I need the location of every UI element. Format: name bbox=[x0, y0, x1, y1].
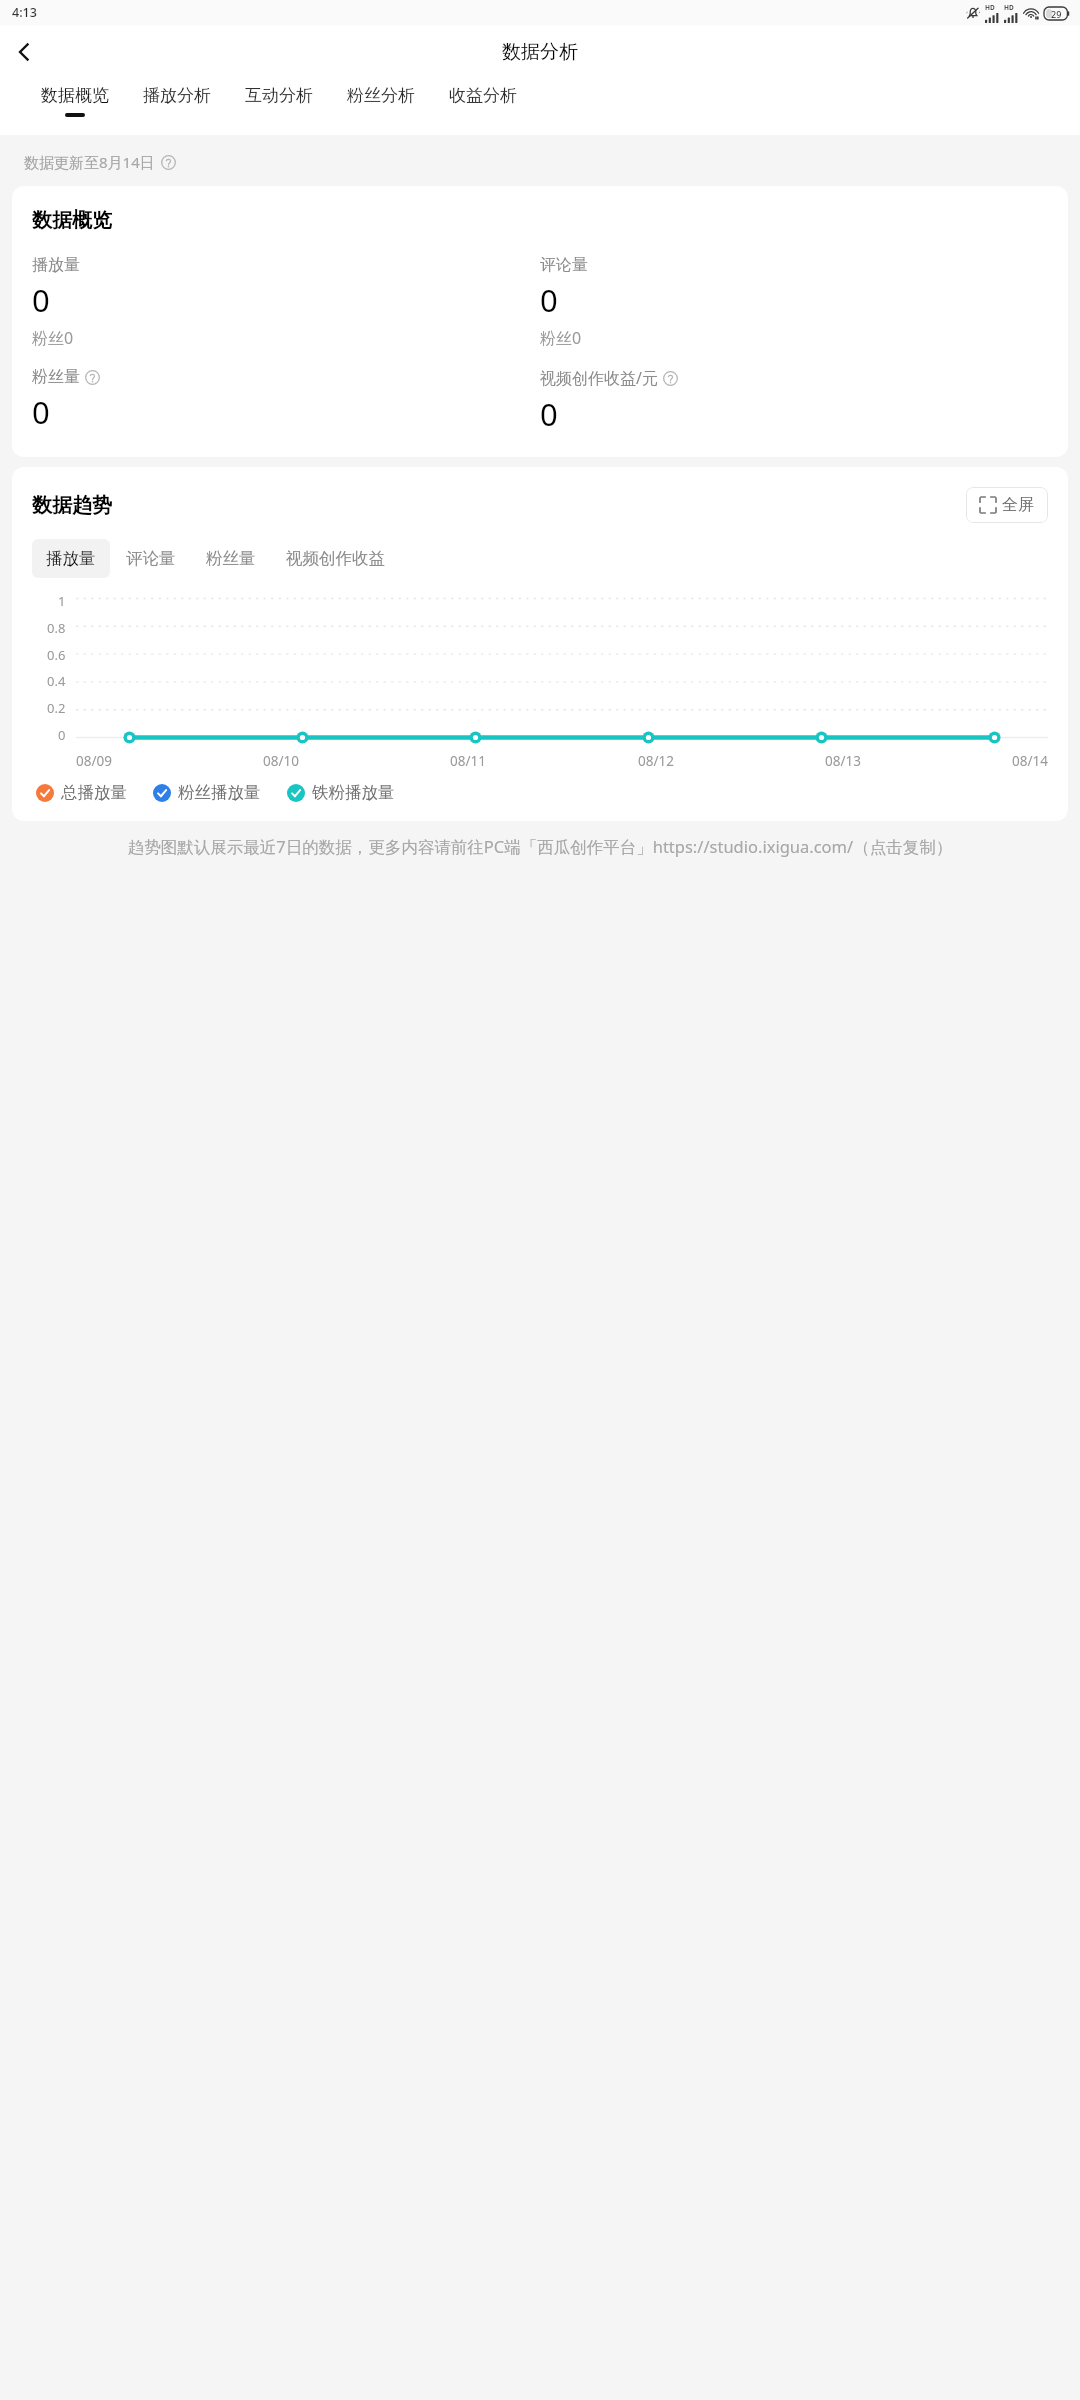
staticText: 0 bbox=[32, 279, 50, 321]
button[interactable]: 铁粉播放量 bbox=[287, 782, 395, 803]
staticText: 0 bbox=[540, 393, 558, 435]
button[interactable]: 总播放量 bbox=[36, 782, 127, 803]
staticText: 1 bbox=[58, 592, 66, 610]
staticText: HD bbox=[1004, 3, 1014, 12]
button[interactable]: 评论量 bbox=[112, 539, 190, 578]
staticText: 0 bbox=[32, 391, 50, 433]
staticText: HD bbox=[985, 3, 995, 12]
staticText: 粉丝分析 bbox=[347, 85, 415, 106]
staticText: 0 bbox=[58, 726, 66, 744]
staticText: 粉丝播放量 bbox=[178, 782, 261, 803]
button[interactable]: 视频创作收益 bbox=[272, 539, 399, 578]
staticText: 播放分析 bbox=[143, 85, 211, 106]
staticText: 08/10 bbox=[263, 752, 299, 770]
button[interactable]: 播放量 bbox=[32, 255, 540, 349]
staticText: 0.2 bbox=[47, 699, 66, 717]
staticText: 0.4 bbox=[47, 672, 66, 690]
staticText: 评论量 bbox=[540, 255, 588, 275]
staticText: 播放量 bbox=[32, 255, 80, 275]
staticText: 收益分析 bbox=[449, 85, 517, 106]
staticText: 0 bbox=[540, 279, 558, 321]
staticText: 数据概览 bbox=[32, 208, 112, 233]
staticText: 粉丝0 bbox=[540, 327, 582, 349]
button[interactable]: 趋势图默认展示最近7日的数据，更多内容请前往PC端「西瓜创作平台」https:/… bbox=[26, 835, 1054, 858]
staticText: 总播放量 bbox=[61, 782, 127, 803]
button[interactable]: 全屏 bbox=[966, 487, 1048, 523]
staticText: 评论量 bbox=[126, 548, 176, 569]
staticText: 互动分析 bbox=[245, 85, 313, 106]
staticText: 粉丝0 bbox=[32, 327, 74, 349]
staticText: 数据概览 bbox=[41, 85, 109, 106]
staticText: 0.6 bbox=[47, 646, 66, 664]
staticText: 08/09 bbox=[76, 752, 112, 770]
staticText: 视频创作收益/元 bbox=[540, 367, 658, 389]
button[interactable]: 评论量 bbox=[540, 255, 1048, 349]
staticText: 粉丝量 bbox=[206, 548, 256, 569]
button[interactable]: 互动分析 bbox=[228, 79, 330, 135]
staticText: 播放量 bbox=[46, 548, 96, 569]
staticText: 粉丝量 bbox=[32, 367, 80, 387]
staticText: 视频创作收益 bbox=[286, 548, 385, 569]
button[interactable]: 收益分析 bbox=[432, 79, 534, 135]
button[interactable]: 视频创作收益/元 bbox=[540, 367, 1048, 435]
staticText: 趋势图默认展示最近7日的数据，更多内容请前往PC端「西瓜创作平台」https:/… bbox=[26, 835, 1054, 858]
button[interactable]: Back bbox=[0, 28, 48, 76]
staticText: 08/14 bbox=[1012, 752, 1048, 770]
button[interactable]: 粉丝分析 bbox=[330, 79, 432, 135]
staticText: 数据趋势 bbox=[32, 493, 112, 518]
staticText: 铁粉播放量 bbox=[312, 782, 395, 803]
staticText: 08/11 bbox=[450, 752, 486, 770]
button[interactable]: 数据概览 bbox=[24, 79, 126, 135]
staticText: 全屏 bbox=[1002, 495, 1034, 515]
button[interactable]: 粉丝量 bbox=[32, 367, 540, 433]
button[interactable]: 粉丝量 bbox=[192, 539, 270, 578]
staticText: 08/13 bbox=[825, 752, 861, 770]
button[interactable]: 粉丝播放量 bbox=[153, 782, 261, 803]
staticText: 4:13 bbox=[12, 4, 37, 21]
button[interactable]: 播放量 bbox=[32, 539, 110, 578]
staticText: 数据分析 bbox=[502, 40, 578, 64]
button[interactable]: 播放分析 bbox=[126, 79, 228, 135]
staticText: 数据更新至8月14日 bbox=[24, 152, 155, 172]
staticText: 08/12 bbox=[638, 752, 674, 770]
staticText: 29 bbox=[1051, 8, 1062, 20]
staticText: 0.8 bbox=[47, 619, 66, 637]
